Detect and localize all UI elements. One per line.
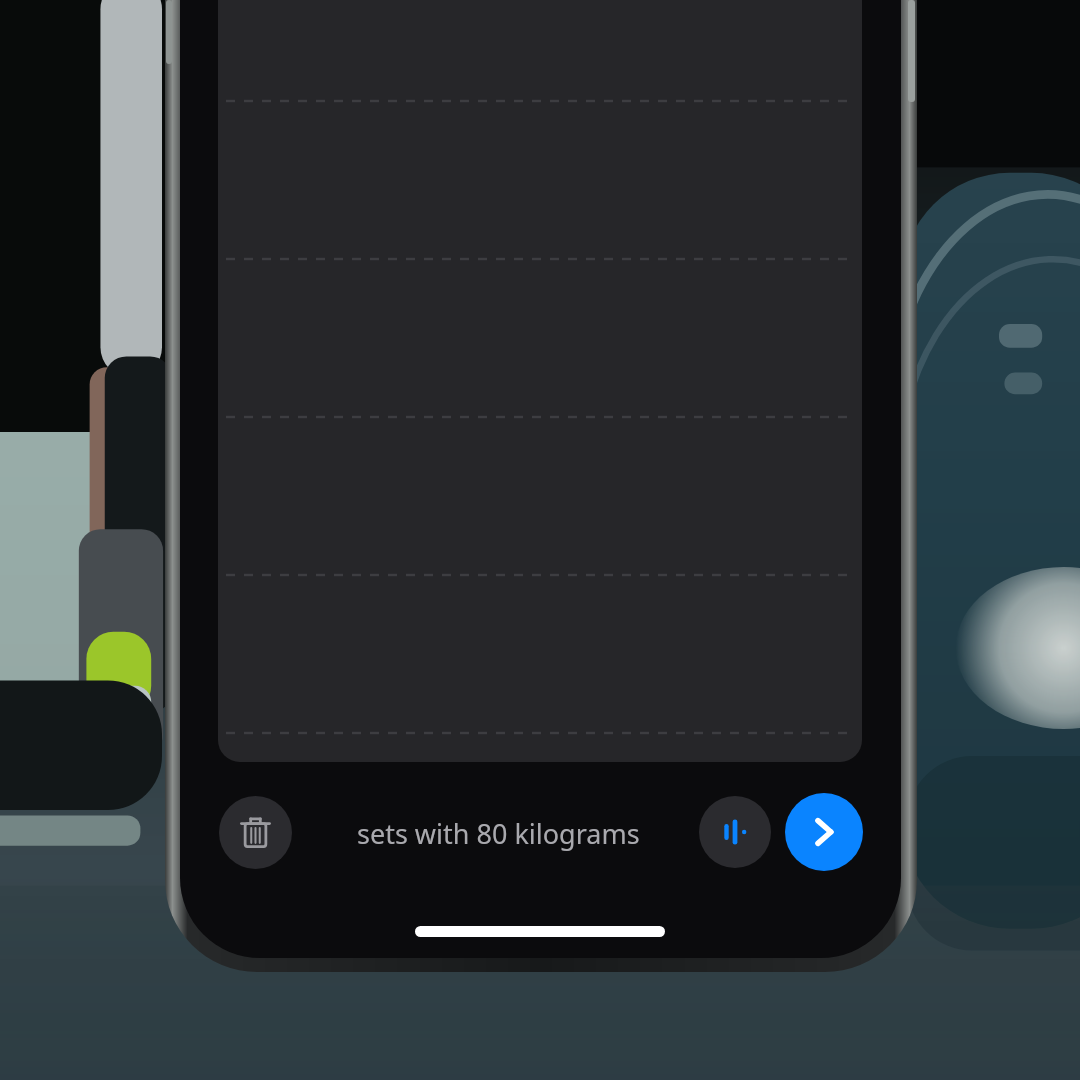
- button[interactable]: Voice input: [699, 796, 771, 868]
- staticText: sets with 80 kilograms: [357, 815, 640, 852]
- button[interactable]: Delete: [219, 796, 292, 869]
- button[interactable]: Send: [785, 793, 863, 871]
- button[interactable]: sets with 80 kilograms: [330, 806, 666, 860]
